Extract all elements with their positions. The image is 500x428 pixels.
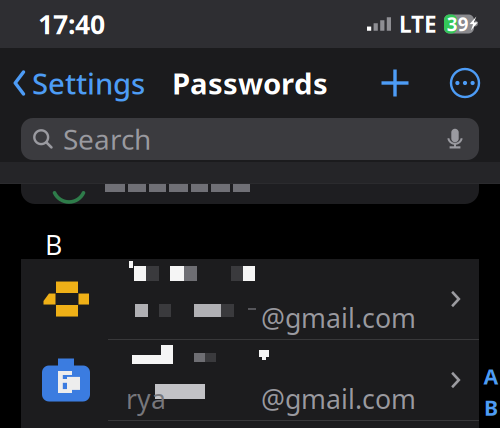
staticText: B [45, 227, 62, 262]
staticText: Passwords [172, 63, 328, 102]
staticText: B [484, 393, 498, 422]
staticText: rya [126, 381, 166, 416]
staticText: 17:40 [38, 6, 105, 42]
staticText: 39 [447, 12, 469, 36]
button[interactable]: Add new password [369, 59, 421, 107]
button[interactable]: rya [21, 340, 479, 420]
staticText: Settings [32, 63, 145, 102]
staticText: @gmail.com [261, 381, 416, 416]
staticText: LTE [399, 9, 437, 39]
staticText: A [483, 362, 498, 390]
staticText: @gmail.com [261, 300, 416, 335]
button[interactable]: Search [21, 118, 479, 160]
button[interactable]: Settings [0, 59, 153, 107]
button[interactable]: More options [439, 59, 491, 107]
staticText: Search [63, 120, 151, 158]
button[interactable]: @gmail.com [21, 259, 479, 339]
